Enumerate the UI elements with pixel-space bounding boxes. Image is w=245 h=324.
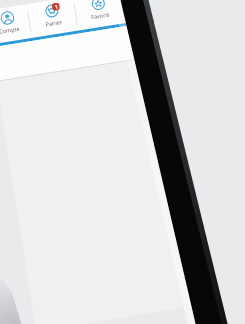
button[interactable]: Panier [27,0,78,38]
button[interactable]: Économies totales [154,21,202,49]
other: Favoris [91,0,106,11]
other: Support [137,0,152,4]
button[interactable]: Compte [0,4,31,44]
staticText: Compte [0,25,20,35]
button[interactable]: Favoris [73,0,124,30]
staticText: Panier [45,18,63,28]
button[interactable]: Support [120,0,171,23]
staticText: Favoris [90,10,110,20]
staticText: Économies totales [154,21,200,35]
other: Compte [0,10,15,25]
staticText: Support [136,3,157,13]
staticText: 1 [54,3,58,11]
other: Panier [44,3,59,18]
